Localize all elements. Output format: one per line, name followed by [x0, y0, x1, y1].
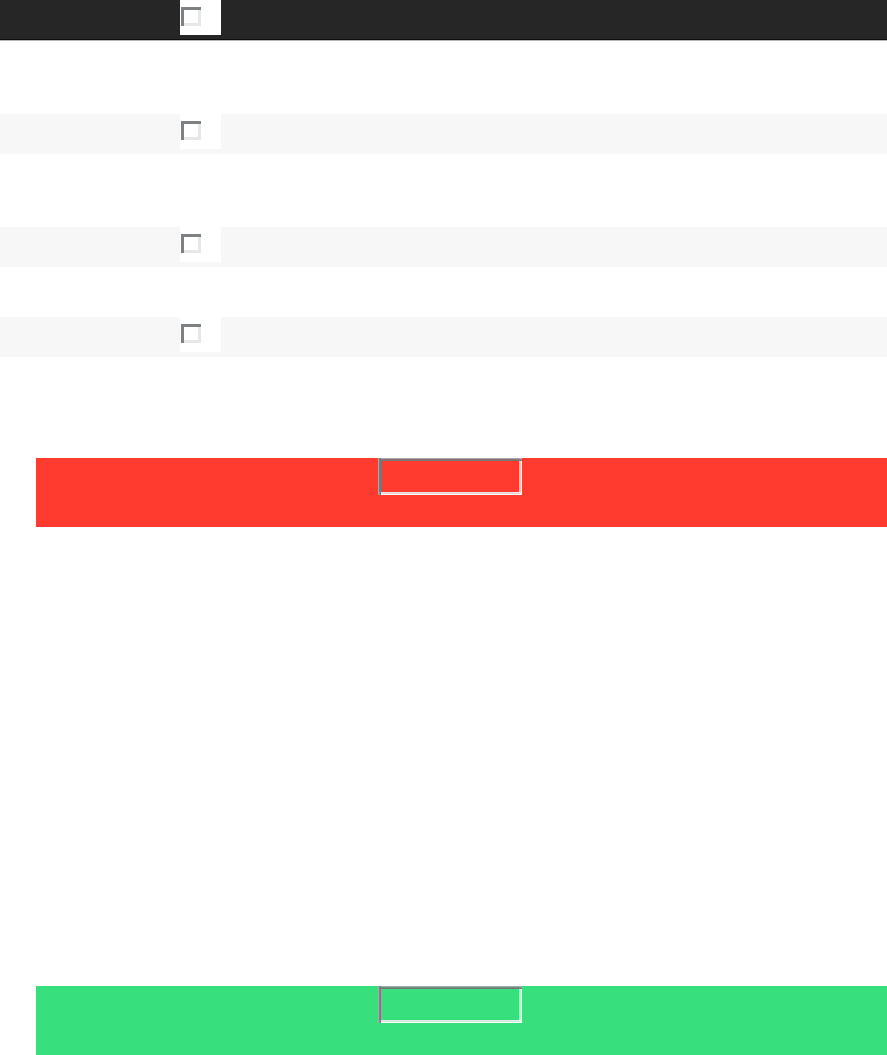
button[interactable]: List item 3 — [0, 317, 887, 357]
button[interactable]: Screen title — [180, 0, 221, 35]
button[interactable]: List item 2 — [0, 227, 887, 267]
button[interactable]: Primary action — [36, 458, 887, 527]
button[interactable]: Secondary action — [36, 986, 887, 1055]
button[interactable]: List item 1 — [0, 114, 887, 154]
